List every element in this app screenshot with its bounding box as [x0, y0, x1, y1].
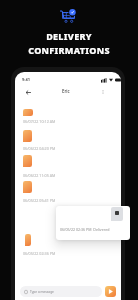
button[interactable]: Photo message: [23, 130, 32, 142]
other: Delivery cart: [60, 10, 75, 23]
button[interactable]: Photo message: [23, 181, 32, 193]
button[interactable]: Photo message: [23, 155, 32, 167]
staticText: 06/06/22 04:20 PM: [23, 146, 56, 151]
staticText: 06/05/22 02:36 PM: [23, 251, 56, 256]
staticText: 06/05/22 02:36 PM Delivered: [60, 227, 110, 232]
button[interactable]: Back: [25, 89, 32, 96]
staticText: DELIVERY: [0, 30, 138, 42]
button[interactable]: 06/05/22 02:36 PM Delivered: [56, 206, 130, 240]
button[interactable]: Send: [105, 286, 116, 297]
staticText: Type a message: [30, 290, 54, 294]
button[interactable]: Photo message: [25, 234, 31, 246]
staticText: 06/07/22 10:12 AM: [23, 119, 56, 124]
staticText: 06/05/22 05:41 PM: [23, 198, 56, 203]
button[interactable]: Type a message: [24, 286, 98, 297]
staticText: Eric: [62, 88, 70, 94]
button[interactable]: More options: [100, 88, 106, 96]
staticText: CONFIRMATIONS: [0, 44, 138, 56]
staticText: 06/06/22 11:05 AM: [23, 173, 56, 178]
button[interactable]: Eric: [62, 88, 70, 94]
button[interactable]: Photo message: [23, 109, 33, 116]
staticText: 9:41: [22, 77, 30, 82]
